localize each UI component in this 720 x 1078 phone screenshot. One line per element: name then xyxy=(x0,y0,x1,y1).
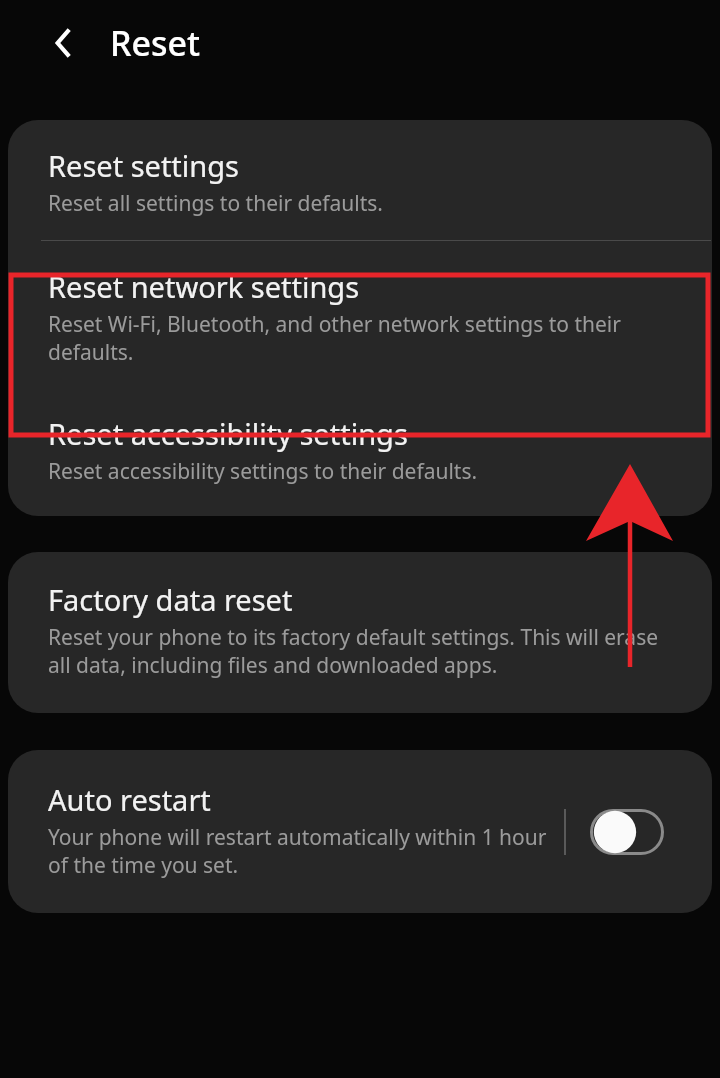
staticText: Auto restart xyxy=(48,780,211,819)
staticText: Reset network settings xyxy=(48,267,360,306)
staticText: Factory data reset xyxy=(48,580,293,619)
staticText: Reset all settings to their defaults. xyxy=(48,189,383,218)
button[interactable]: Back xyxy=(32,11,96,75)
staticText: Reset Wi-Fi, Bluetooth, and other networ… xyxy=(48,310,680,366)
button[interactable]: Factory data reset xyxy=(8,552,712,713)
staticText: Reset xyxy=(110,20,201,66)
button[interactable]: Auto restart toggle xyxy=(590,809,664,855)
button[interactable]: Auto restart xyxy=(8,750,564,913)
staticText: Reset your phone to its factory default … xyxy=(48,623,680,679)
button[interactable]: Reset network settings xyxy=(8,241,712,392)
staticText: Reset accessibility settings to their de… xyxy=(48,457,478,486)
staticText: Your phone will restart automatically wi… xyxy=(48,823,556,879)
staticText: Reset settings xyxy=(48,146,239,185)
staticText: Reset accessibility settings xyxy=(48,414,408,453)
button[interactable]: Reset accessibility settings xyxy=(8,392,712,516)
button[interactable]: Reset settings xyxy=(8,120,712,240)
